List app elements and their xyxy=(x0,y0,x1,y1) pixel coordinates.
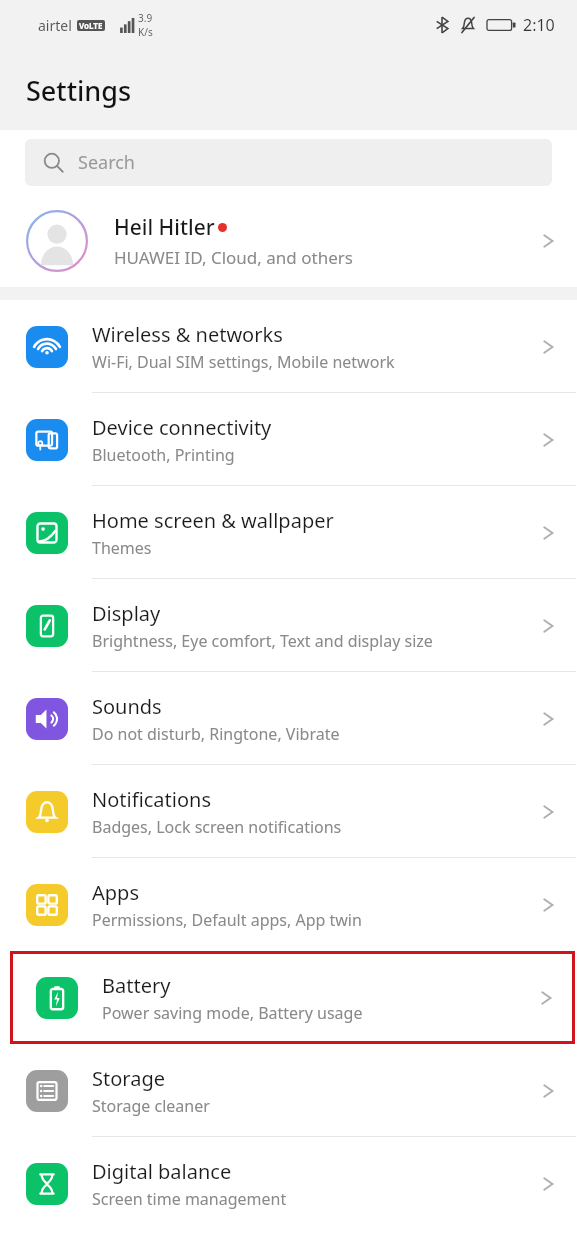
other: Open xyxy=(537,615,559,637)
staticText: Display xyxy=(92,600,161,627)
staticText: Notifications xyxy=(92,786,211,813)
button[interactable]: Device connectivity xyxy=(0,393,577,486)
staticText: Home screen & wallpaper xyxy=(92,507,334,534)
staticText: Storage cleaner xyxy=(92,1095,210,1117)
button[interactable]: Home screen & wallpaper xyxy=(0,486,577,579)
other: Open xyxy=(537,230,559,252)
other: Open xyxy=(537,894,559,916)
staticText: Do not disturb, Ringtone, Vibrate xyxy=(92,723,340,745)
button[interactable]: Display xyxy=(0,579,577,672)
staticText: Permissions, Default apps, App twin xyxy=(92,909,362,931)
button[interactable]: Apps xyxy=(0,858,577,951)
button[interactable]: Sounds xyxy=(0,672,577,765)
other: Open xyxy=(535,987,557,1009)
other: Open xyxy=(537,336,559,358)
other: Open xyxy=(537,1173,559,1195)
staticText: Digital balance xyxy=(92,1158,232,1185)
staticText: Search xyxy=(78,150,135,175)
other: Open xyxy=(537,801,559,823)
staticText: Wireless & networks xyxy=(92,321,283,348)
staticText: Heil Hitler xyxy=(114,213,215,242)
staticText: Storage xyxy=(92,1065,165,1092)
staticText: 2:10 xyxy=(523,14,555,36)
staticText: Sounds xyxy=(92,693,162,720)
button[interactable]: Notifications xyxy=(0,765,577,858)
staticText: Themes xyxy=(92,537,152,559)
staticText: Brightness, Eye comfort, Text and displa… xyxy=(92,630,433,652)
staticText: Badges, Lock screen notifications xyxy=(92,816,342,838)
staticText: 3.9 xyxy=(138,11,153,25)
other: Open xyxy=(537,1080,559,1102)
staticText: K/s xyxy=(138,25,153,39)
staticText: Settings xyxy=(26,72,132,109)
staticText: Wi-Fi, Dual SIM settings, Mobile network xyxy=(92,351,395,373)
staticText: airtel xyxy=(38,16,72,35)
button[interactable]: Storage xyxy=(0,1044,577,1137)
other: Open xyxy=(537,708,559,730)
staticText: HUAWEI ID, Cloud, and others xyxy=(114,246,353,269)
staticText: Device connectivity xyxy=(92,414,272,441)
button[interactable]: Battery xyxy=(10,951,575,1044)
staticText: Battery xyxy=(102,972,171,999)
staticText: Power saving mode, Battery usage xyxy=(102,1002,363,1024)
button[interactable]: Digital balance xyxy=(0,1137,577,1230)
button[interactable]: Heil Hitler xyxy=(0,195,577,287)
other: Open xyxy=(537,429,559,451)
staticText: VoLTE xyxy=(79,20,103,31)
other: Open xyxy=(537,522,559,544)
button[interactable]: Wireless & networks xyxy=(0,300,577,393)
staticText: Screen time management xyxy=(92,1188,287,1210)
staticText: Bluetooth, Printing xyxy=(92,444,235,466)
staticText: Apps xyxy=(92,879,139,906)
button[interactable]: Search xyxy=(25,139,552,186)
